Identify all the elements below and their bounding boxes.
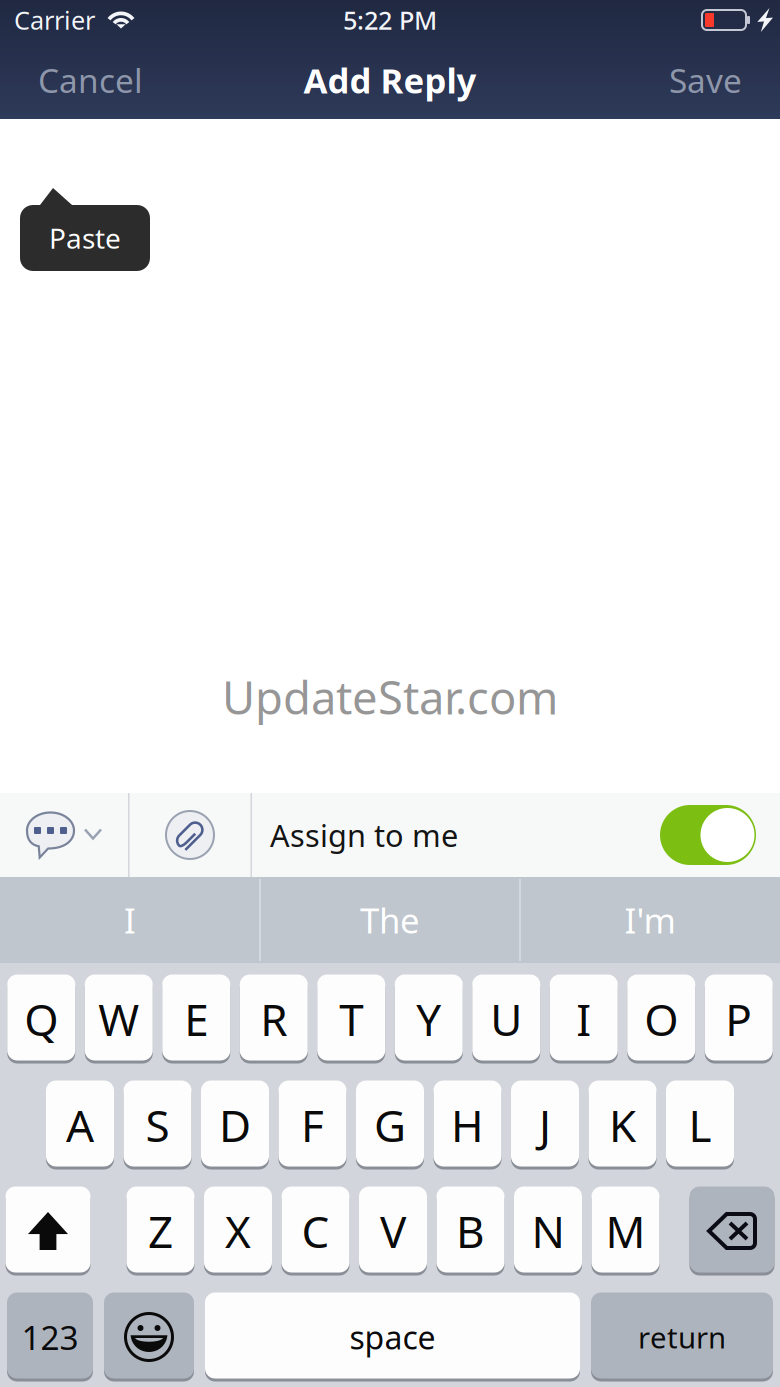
staticText: B — [456, 1202, 485, 1260]
staticText: T — [339, 990, 363, 1048]
button[interactable]: I'm — [521, 877, 779, 963]
button[interactable]: N — [514, 1186, 582, 1275]
button[interactable]: Save — [651, 41, 760, 119]
staticText: R — [260, 990, 287, 1048]
staticText: P — [725, 990, 752, 1048]
staticText: 5:22 PM — [343, 3, 437, 37]
button[interactable]: F — [278, 1080, 346, 1169]
staticText: Save — [669, 58, 742, 102]
button[interactable] — [104, 1292, 194, 1381]
button[interactable]: A — [46, 1080, 114, 1169]
button[interactable]: X — [204, 1186, 272, 1275]
staticText: H — [451, 1096, 484, 1154]
staticText: S — [145, 1096, 169, 1154]
staticText: Add Reply — [303, 57, 476, 103]
staticText: W — [98, 990, 139, 1048]
button[interactable]: G — [356, 1080, 424, 1169]
staticText: I — [576, 990, 591, 1048]
button[interactable]: I — [1, 877, 259, 963]
button[interactable]: W — [85, 974, 153, 1063]
staticText: 123 — [21, 1315, 78, 1359]
button[interactable]: O — [627, 974, 695, 1063]
staticText: C — [301, 1202, 329, 1260]
button[interactable]: The — [261, 877, 519, 963]
button[interactable]: Cancel — [20, 41, 161, 119]
staticText: E — [184, 990, 208, 1048]
button[interactable]: T — [317, 974, 385, 1063]
staticText: I'm — [624, 897, 675, 943]
button[interactable]: J — [511, 1080, 579, 1169]
staticText: Paste — [49, 219, 121, 257]
staticText: K — [609, 1096, 636, 1154]
button[interactable]: Q — [7, 974, 75, 1063]
staticText: Cancel — [38, 58, 143, 102]
staticText: F — [301, 1096, 324, 1154]
button[interactable]: V — [359, 1186, 427, 1275]
button[interactable]: space — [205, 1292, 580, 1381]
button[interactable]: M — [591, 1186, 659, 1275]
button[interactable]: D — [201, 1080, 269, 1169]
button[interactable]: 123 — [7, 1292, 93, 1381]
button[interactable]: H — [433, 1080, 501, 1169]
button[interactable]: U — [472, 974, 540, 1063]
button[interactable]: return — [591, 1292, 773, 1381]
staticText: G — [374, 1096, 406, 1154]
button[interactable]: C — [281, 1186, 349, 1275]
button[interactable]: R — [240, 974, 308, 1063]
button[interactable]: Attach file — [129, 793, 250, 877]
staticText: Q — [24, 990, 58, 1048]
button[interactable]: B — [436, 1186, 504, 1275]
button[interactable]: L — [666, 1080, 734, 1169]
staticText: Assign to me — [270, 815, 458, 855]
button[interactable]: S — [123, 1080, 191, 1169]
staticText: X — [225, 1202, 251, 1260]
button[interactable] — [5, 1186, 90, 1275]
button[interactable]: Y — [395, 974, 463, 1063]
staticText: D — [219, 1096, 251, 1154]
staticText: N — [531, 1202, 564, 1260]
button[interactable]: I — [550, 974, 618, 1063]
button[interactable]: P — [705, 974, 773, 1063]
staticText: A — [66, 1096, 94, 1154]
staticText: space — [349, 1316, 435, 1358]
staticText: V — [380, 1202, 406, 1260]
staticText: Carrier — [14, 3, 95, 37]
button[interactable]: Paste — [20, 188, 150, 271]
button[interactable] — [689, 1186, 774, 1275]
staticText: The — [360, 897, 420, 943]
button[interactable]: E — [162, 974, 230, 1063]
button[interactable]: Z — [126, 1186, 194, 1275]
staticText: M — [605, 1202, 645, 1260]
button[interactable]: Assign to me — [252, 793, 780, 877]
staticText: Y — [416, 990, 441, 1048]
staticText: UpdateStar.com — [222, 667, 558, 727]
button[interactable]: Canned responses — [0, 793, 128, 877]
staticText: I — [124, 897, 136, 943]
staticText: Z — [148, 1202, 173, 1260]
staticText: J — [539, 1096, 551, 1154]
staticText: U — [490, 990, 522, 1048]
staticText: O — [644, 990, 678, 1048]
staticText: L — [688, 1096, 711, 1154]
button[interactable]: K — [588, 1080, 656, 1169]
staticText: return — [638, 1317, 726, 1356]
